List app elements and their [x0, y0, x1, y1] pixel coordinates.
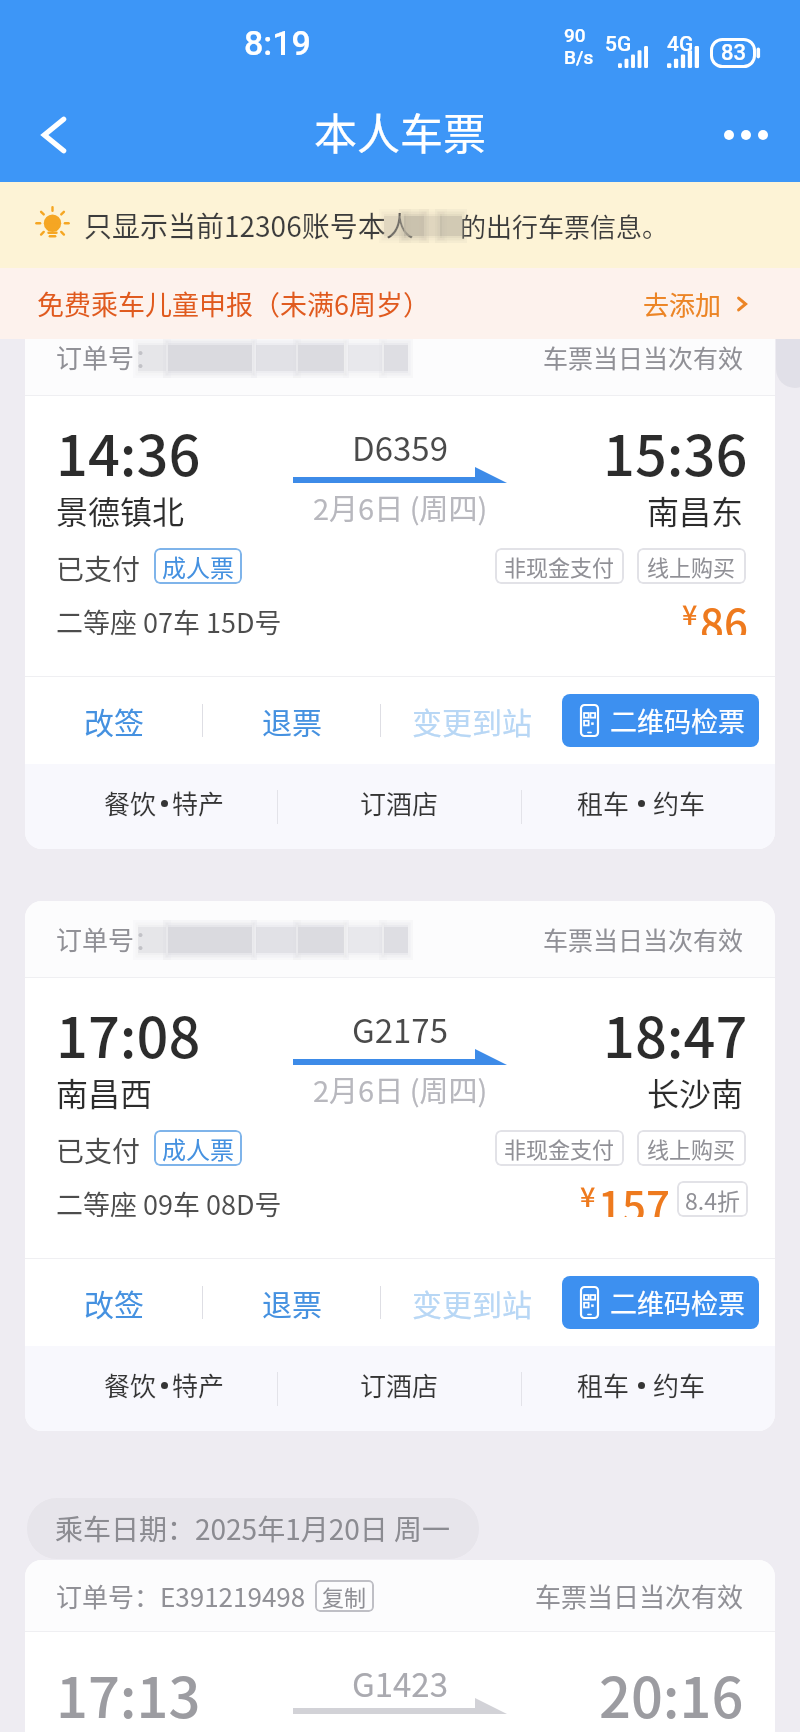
- staticText: 已支付: [56, 548, 141, 584]
- staticText: 17:08: [56, 993, 201, 1074]
- staticText: 退票: [262, 699, 322, 742]
- staticText: ¥: [682, 594, 698, 633]
- staticText: 长沙南: [647, 1069, 744, 1115]
- staticText: 二等座 09车 08D号: [56, 1184, 282, 1223]
- staticText: 餐饮: [104, 1366, 157, 1404]
- staticText: G2175: [352, 1005, 448, 1053]
- staticText: 特产: [172, 1366, 225, 1404]
- staticText: 的出行车票信息。: [460, 207, 669, 245]
- staticText: 车票当日当次有效: [543, 339, 744, 375]
- staticText: 免费乘车儿童申报（未满6周岁）: [37, 284, 430, 323]
- staticText: 二等座 07车 15D号: [56, 602, 282, 641]
- staticText: 8:19: [244, 23, 311, 63]
- staticText: 17:13: [56, 1653, 201, 1732]
- staticText: 15:36: [603, 411, 748, 492]
- staticText: 非现金支付: [504, 550, 615, 582]
- button[interactable]: 更多: [708, 97, 784, 173]
- staticText: 南昌东: [647, 487, 744, 533]
- staticText: 二维码检票: [610, 701, 745, 740]
- button[interactable]: 退票: [203, 1259, 380, 1346]
- staticText: 约车: [653, 784, 706, 822]
- staticText: 退票: [262, 1281, 322, 1324]
- staticText: 83: [721, 40, 747, 66]
- button[interactable]: 餐饮: [25, 764, 277, 849]
- staticText: 乘车日期：2025年1月20日 周一: [55, 1508, 451, 1549]
- button[interactable]: 改签: [25, 1259, 202, 1346]
- staticText: 18:47: [603, 993, 748, 1074]
- staticText: 成人票: [162, 549, 234, 584]
- staticText: 订单号：: [56, 920, 161, 958]
- staticText: 南昌西: [56, 1069, 153, 1115]
- button[interactable]: 改签: [25, 677, 202, 764]
- staticText: 线上购买: [647, 1132, 736, 1164]
- staticText: 已支付: [56, 1130, 141, 1166]
- button[interactable]: 租车: [522, 1346, 775, 1431]
- staticText: 约车: [653, 1366, 706, 1404]
- staticText: ¥: [580, 1176, 596, 1215]
- staticText: 餐饮: [104, 784, 157, 822]
- staticText: 8.4折: [685, 1183, 740, 1216]
- button[interactable]: 返回: [16, 97, 92, 173]
- staticText: 86: [700, 591, 748, 635]
- staticText: 变更到站: [412, 699, 532, 742]
- staticText: 20:16: [599, 1653, 744, 1732]
- staticText: 特产: [172, 784, 225, 822]
- staticText: 景德镇北: [56, 487, 185, 533]
- staticText: B/s: [564, 46, 594, 68]
- button[interactable]: 免费乘车儿童申报（未满6周岁）: [0, 268, 800, 339]
- button[interactable]: 退票: [203, 677, 380, 764]
- staticText: 改签: [84, 1281, 144, 1324]
- staticText: 租车: [577, 1366, 630, 1404]
- staticText: 车票当日当次有效: [543, 921, 744, 957]
- staticText: 复制: [322, 1580, 367, 1612]
- button[interactable]: 餐饮: [25, 1346, 277, 1431]
- staticText: 去添加: [643, 285, 722, 323]
- staticText: 90: [564, 24, 586, 46]
- button[interactable]: 变更到站: [381, 1259, 562, 1346]
- staticText: 改签: [84, 699, 144, 742]
- staticText: 本人车票: [314, 100, 486, 162]
- staticText: 成人票: [162, 1131, 234, 1166]
- staticText: 订单号：E391219498: [56, 1577, 306, 1615]
- staticText: 车票当日当次有效: [535, 1577, 744, 1615]
- staticText: G1423: [352, 1659, 448, 1707]
- staticText: 订单号：: [56, 338, 161, 376]
- button[interactable]: 复制: [315, 1580, 374, 1612]
- button[interactable]: 变更到站: [381, 677, 562, 764]
- staticText: 订酒店: [360, 784, 439, 822]
- staticText: 非现金支付: [504, 1132, 615, 1164]
- button[interactable]: 订酒店: [278, 764, 521, 849]
- staticText: 157: [598, 1173, 670, 1217]
- button[interactable]: 悬浮面板: [776, 202, 800, 388]
- staticText: 租车: [577, 784, 630, 822]
- staticText: 线上购买: [647, 550, 736, 582]
- staticText: D6359: [352, 423, 448, 471]
- staticText: 4G: [667, 32, 694, 57]
- button[interactable]: 二维码检票: [562, 694, 759, 747]
- staticText: 只显示当前12306账号本人: [84, 205, 414, 246]
- staticText: 2月6日 (周四): [313, 1068, 488, 1110]
- staticText: 二维码检票: [610, 1283, 745, 1322]
- staticText: 订酒店: [360, 1366, 439, 1404]
- button[interactable]: 二维码检票: [562, 1276, 759, 1329]
- button[interactable]: 租车: [522, 764, 775, 849]
- staticText: 变更到站: [412, 1281, 532, 1324]
- button[interactable]: 订酒店: [278, 1346, 521, 1431]
- staticText: 5G: [605, 32, 632, 57]
- staticText: 14:36: [56, 411, 201, 492]
- staticText: 2月6日 (周四): [313, 486, 488, 528]
